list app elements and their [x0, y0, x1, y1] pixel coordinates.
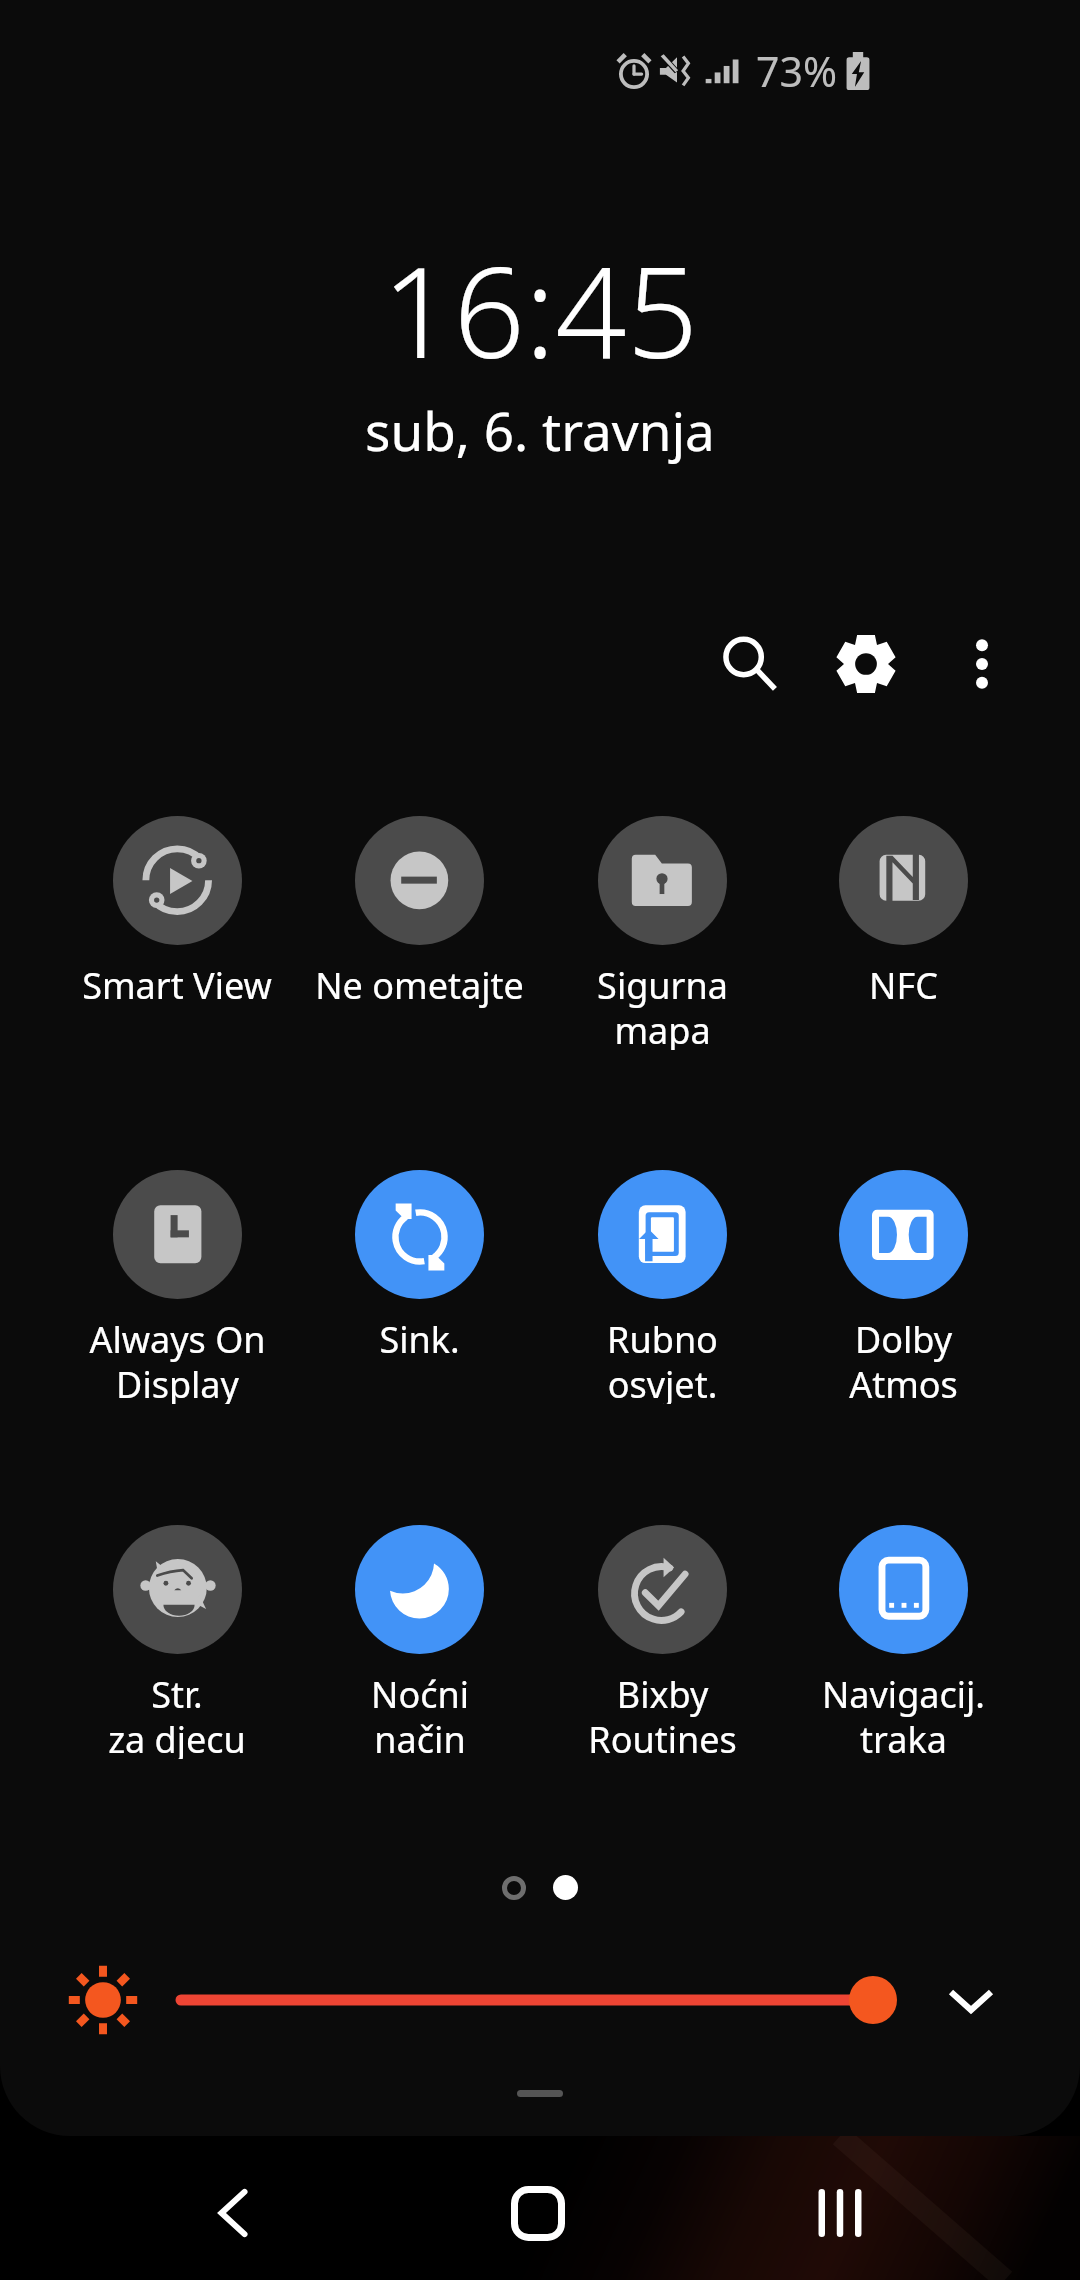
staticText: Smart View [82, 961, 272, 1010]
button[interactable]: Dolby Atmos [778, 1154, 1028, 1404]
staticText: Always On Display [89, 1315, 266, 1404]
staticText: Rubno osvjet. [607, 1315, 718, 1404]
button[interactable]: Bixby Routines [537, 1509, 787, 1759]
button[interactable]: Smart View [52, 800, 302, 1050]
button[interactable]: Search [700, 614, 800, 714]
staticText: Noćni način [371, 1670, 469, 1759]
staticText: Dolby Atmos [849, 1315, 958, 1404]
button[interactable]: Expand [931, 1960, 1011, 2040]
staticText: Sigurna mapa [597, 961, 728, 1050]
button[interactable]: Always On Display [52, 1154, 302, 1404]
staticText: Bixby Routines [588, 1670, 737, 1759]
staticText: Str. za djecu [108, 1670, 246, 1759]
button[interactable]: Sink. [294, 1154, 544, 1404]
button[interactable]: Ne ometajte [294, 800, 544, 1050]
button[interactable]: Back [171, 2151, 295, 2275]
staticText: NFC [869, 961, 938, 1010]
staticText: sub, 6. travnja [365, 394, 715, 466]
button[interactable]: Sigurna mapa [537, 800, 787, 1050]
staticText: 73% [756, 43, 837, 99]
button[interactable]: More options [932, 614, 1032, 714]
staticText: Sink. [379, 1315, 460, 1364]
button[interactable]: NFC [778, 800, 1028, 1050]
staticText: Navigacij. traka [822, 1670, 985, 1759]
staticText: 16:45 [382, 224, 698, 394]
button[interactable]: Noćni način [294, 1509, 544, 1759]
button[interactable]: Home [476, 2151, 600, 2275]
button[interactable]: Recents [778, 2151, 902, 2275]
button[interactable]: Str. za djecu [52, 1509, 302, 1759]
button[interactable]: Navigacij. traka [778, 1509, 1028, 1759]
button[interactable]: Rubno osvjet. [537, 1154, 787, 1404]
button[interactable]: Settings [816, 614, 916, 714]
staticText: Ne ometajte [315, 961, 524, 1010]
